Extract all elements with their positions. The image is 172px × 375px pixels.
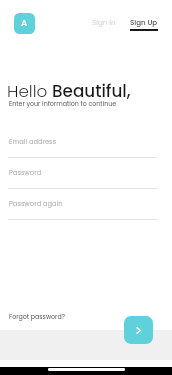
staticText: Forgot password? xyxy=(9,312,65,321)
button[interactable]: Sign Up xyxy=(130,18,158,31)
staticText: Hello Beautiful, xyxy=(7,79,131,103)
staticText: A xyxy=(21,17,28,30)
staticText: Password again xyxy=(9,199,63,208)
button[interactable]: Continue xyxy=(124,316,153,344)
button[interactable]: Sign In xyxy=(88,16,120,30)
staticText: Enter your information to continue xyxy=(9,99,117,108)
staticText: Sign Up xyxy=(130,18,158,28)
staticText: Email address xyxy=(9,137,57,146)
button[interactable]: Forgot password? xyxy=(5,309,69,324)
staticText: Password xyxy=(9,168,42,177)
staticText: Sign In xyxy=(92,18,116,28)
button[interactable]: App logo xyxy=(14,13,35,34)
